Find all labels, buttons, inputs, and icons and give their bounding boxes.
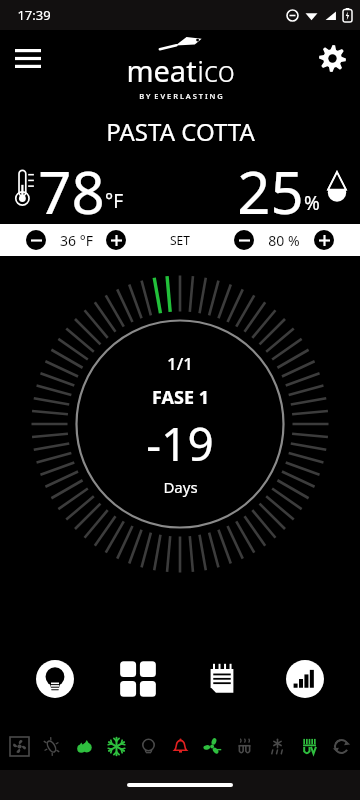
- button[interactable]: Increase temperature: [106, 230, 126, 250]
- button[interactable]: Cycle: [328, 733, 354, 759]
- button[interactable]: UV: [296, 733, 322, 759]
- button[interactable]: Fan: [6, 733, 32, 759]
- staticText: meat: [126, 51, 197, 90]
- button[interactable]: Alarm: [167, 733, 193, 759]
- button[interactable]: Statistics: [276, 650, 334, 708]
- staticText: -19: [146, 412, 214, 475]
- staticText: %: [304, 190, 320, 216]
- button[interactable]: Settings: [310, 36, 354, 80]
- staticText: PASTA COTTA: [106, 115, 255, 148]
- staticText: 25: [237, 152, 304, 222]
- button[interactable]: 1/1: [146, 352, 214, 497]
- button[interactable]: Menu: [6, 36, 50, 80]
- staticText: SET: [170, 232, 190, 248]
- button[interactable]: Heating: [231, 733, 257, 759]
- staticText: FASE 1: [152, 385, 209, 410]
- button[interactable]: SET: [126, 224, 234, 256]
- staticText: Days: [163, 477, 198, 497]
- staticText: 17:39: [17, 6, 51, 24]
- staticText: °F: [105, 188, 123, 214]
- button[interactable]: Light: [135, 733, 161, 759]
- staticText: 1/1: [167, 352, 193, 375]
- button[interactable]: Decrease humidity: [234, 230, 254, 250]
- button[interactable]: Ventilation: [199, 733, 225, 759]
- staticText: 78: [38, 152, 105, 222]
- button[interactable]: Decrease temperature: [26, 230, 46, 250]
- staticText: 36 °F: [60, 231, 93, 250]
- button[interactable]: Cooling: [103, 733, 129, 759]
- staticText: 80 %: [268, 231, 300, 250]
- button[interactable]: Defrost: [264, 733, 290, 759]
- button[interactable]: Lighting: [26, 650, 84, 708]
- staticText: ico: [197, 51, 235, 90]
- button[interactable]: Increase humidity: [314, 230, 334, 250]
- staticText: B Y E V E R L A S T I N G: [139, 91, 223, 101]
- button[interactable]: Programs: [109, 650, 167, 708]
- button[interactable]: Humidify: [71, 733, 97, 759]
- button[interactable]: Recipes: [193, 650, 251, 708]
- button[interactable]: Sanitize: [38, 733, 64, 759]
